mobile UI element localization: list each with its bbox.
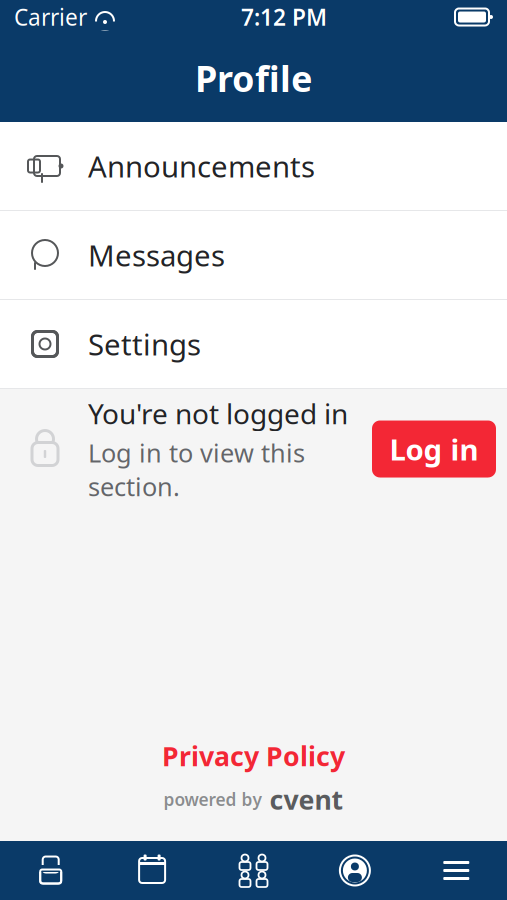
- button[interactable]: Settings: [0, 300, 507, 389]
- staticText: Profile: [195, 54, 312, 102]
- staticText: You're not logged in: [88, 395, 348, 432]
- staticText: Messages: [88, 235, 225, 274]
- staticText: Carrier: [14, 2, 87, 32]
- button[interactable]: Attendees: [203, 853, 304, 887]
- staticText: Settings: [88, 324, 201, 363]
- button[interactable]: Messages: [0, 211, 507, 300]
- staticText: Log in: [389, 429, 478, 468]
- button[interactable]: Privacy Policy: [162, 738, 345, 774]
- staticText: powered by: [163, 788, 261, 811]
- button[interactable]: Profile: [304, 853, 406, 887]
- staticText: 7:12 PM: [241, 2, 327, 32]
- staticText: cvent: [269, 782, 343, 817]
- button[interactable]: More: [406, 855, 507, 885]
- button[interactable]: Schedule: [101, 854, 203, 886]
- button[interactable]: Log in: [372, 420, 496, 477]
- staticText: Privacy Policy: [162, 738, 345, 774]
- staticText: Announcements: [88, 146, 315, 185]
- button[interactable]: Announcements: [0, 122, 507, 211]
- staticText: Log in to view this section.: [88, 436, 305, 503]
- button[interactable]: Home: [0, 855, 101, 885]
